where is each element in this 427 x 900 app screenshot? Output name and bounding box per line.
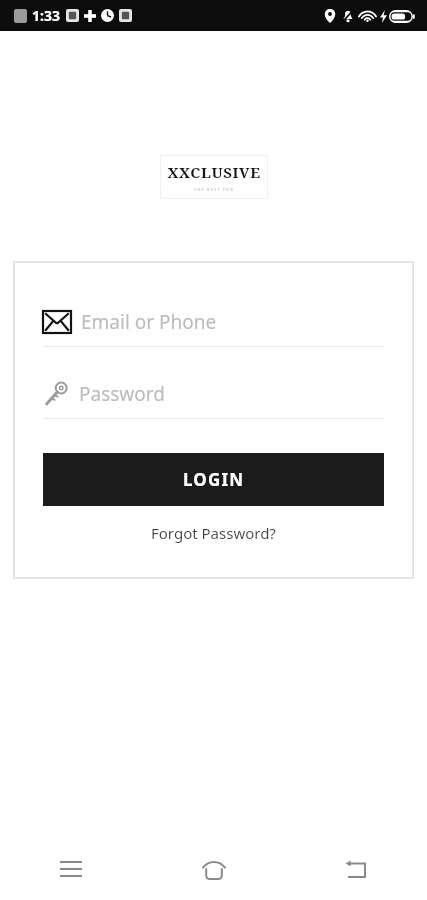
button[interactable]: LOGIN xyxy=(43,453,384,506)
staticText: 1:33 xyxy=(32,6,60,25)
button[interactable]: Back xyxy=(328,841,384,897)
button[interactable]: Home xyxy=(186,841,242,897)
button[interactable]: Email or Phone xyxy=(43,305,384,347)
staticText: XXCLUSIVE xyxy=(167,162,261,182)
staticText: Password xyxy=(79,381,165,407)
staticText: THE BEST FOR xyxy=(194,187,234,192)
staticText: LOGIN xyxy=(183,468,245,491)
staticText: Email or Phone xyxy=(81,309,217,335)
button[interactable]: Forgot Password? xyxy=(145,521,282,545)
button[interactable]: Menu xyxy=(43,841,99,897)
button[interactable]: Password xyxy=(43,377,384,419)
